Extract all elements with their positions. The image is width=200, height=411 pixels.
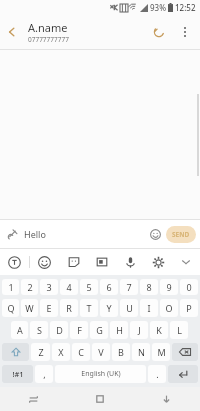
staticText: 1 bbox=[8, 281, 14, 293]
button[interactable]: U bbox=[120, 299, 138, 317]
button[interactable]: I bbox=[140, 299, 158, 317]
button[interactable]: O bbox=[160, 299, 178, 317]
button[interactable]: Hide keyboard bbox=[133, 387, 200, 411]
staticText: S bbox=[37, 324, 42, 336]
button[interactable]: V bbox=[92, 343, 110, 361]
button[interactable]: Backspace bbox=[172, 343, 198, 361]
button[interactable]: C bbox=[72, 343, 90, 361]
button[interactable]: D bbox=[50, 321, 68, 339]
button[interactable]: F bbox=[70, 321, 88, 339]
button[interactable]: M bbox=[152, 343, 170, 361]
staticText: V bbox=[98, 346, 104, 358]
staticText: T bbox=[86, 302, 92, 314]
staticText: O bbox=[165, 302, 173, 314]
staticText: 3 bbox=[46, 281, 52, 293]
button[interactable]: English (UK) bbox=[55, 365, 146, 383]
button[interactable]: N bbox=[132, 343, 150, 361]
button[interactable]: A bbox=[11, 321, 28, 339]
staticText: A.name bbox=[28, 20, 68, 35]
button[interactable]: 1 bbox=[2, 279, 19, 295]
button[interactable]: Voice input bbox=[116, 249, 144, 275]
button[interactable]: W bbox=[21, 299, 38, 317]
staticText: 7 bbox=[126, 281, 132, 293]
button[interactable]: 4 bbox=[60, 279, 78, 295]
button[interactable]: L bbox=[170, 321, 188, 339]
staticText: SEND bbox=[172, 230, 190, 239]
button[interactable]: GIF bbox=[88, 249, 116, 275]
button[interactable]: More options bbox=[172, 19, 198, 45]
button[interactable]: 7 bbox=[120, 279, 138, 295]
button[interactable]: 0 bbox=[180, 279, 198, 295]
staticText: 93% bbox=[150, 2, 166, 13]
staticText: D bbox=[56, 324, 63, 336]
button[interactable]: 8 bbox=[140, 279, 158, 295]
button[interactable]: K bbox=[150, 321, 168, 339]
button[interactable]: H bbox=[110, 321, 128, 339]
button[interactable]: !#1 bbox=[2, 365, 33, 383]
button[interactable]: Text style bbox=[0, 249, 29, 275]
button[interactable]: X bbox=[52, 343, 70, 361]
staticText: N bbox=[138, 346, 145, 358]
button[interactable]: 6 bbox=[100, 279, 118, 295]
staticText: , bbox=[43, 368, 46, 380]
staticText: English (UK) bbox=[81, 369, 121, 379]
staticText: 5 bbox=[86, 281, 92, 293]
staticText: 2 bbox=[27, 281, 33, 293]
staticText: C bbox=[78, 346, 84, 358]
button[interactable]: R bbox=[60, 299, 78, 317]
button[interactable]: E bbox=[40, 299, 58, 317]
staticText: W bbox=[25, 302, 34, 314]
staticText: E bbox=[46, 302, 52, 314]
staticText: Hello bbox=[24, 228, 46, 240]
staticText: Y bbox=[106, 302, 112, 314]
button[interactable]: SEND bbox=[166, 226, 196, 243]
staticText: R bbox=[66, 302, 72, 314]
button[interactable]: Q bbox=[2, 299, 19, 317]
button[interactable]: P bbox=[180, 299, 198, 317]
staticText: L bbox=[177, 324, 182, 336]
staticText: I bbox=[147, 302, 151, 314]
button[interactable]: T bbox=[80, 299, 98, 317]
button[interactable]: A.name bbox=[28, 20, 146, 44]
staticText: B bbox=[118, 346, 124, 358]
button[interactable]: 3 bbox=[40, 279, 58, 295]
button[interactable]: 2 bbox=[21, 279, 38, 295]
button[interactable]: Call bbox=[146, 19, 172, 45]
staticText: 12:52 bbox=[175, 2, 196, 13]
button[interactable]: Recents bbox=[0, 387, 66, 411]
button[interactable]: 9 bbox=[160, 279, 178, 295]
button[interactable]: 5 bbox=[80, 279, 98, 295]
staticText: . bbox=[156, 368, 159, 380]
button[interactable]: Back bbox=[0, 20, 24, 44]
button[interactable]: Z bbox=[31, 343, 50, 361]
button[interactable]: S bbox=[30, 321, 48, 339]
staticText: F bbox=[77, 324, 82, 336]
button[interactable]: Stickers bbox=[59, 249, 88, 275]
staticText: K bbox=[156, 324, 162, 336]
button[interactable]: Settings bbox=[144, 249, 172, 275]
button[interactable]: Enter bbox=[168, 365, 198, 383]
button[interactable]: Emoji bbox=[30, 249, 59, 275]
staticText: 0 bbox=[186, 281, 192, 293]
button[interactable]: Home bbox=[66, 387, 133, 411]
staticText: J bbox=[138, 324, 141, 336]
staticText: X bbox=[58, 346, 64, 358]
staticText: 9 bbox=[166, 281, 172, 293]
staticText: 6 bbox=[106, 281, 112, 293]
staticText: M bbox=[157, 346, 166, 358]
staticText: Q bbox=[7, 302, 15, 314]
button[interactable]: B bbox=[112, 343, 130, 361]
button[interactable]: G bbox=[90, 321, 108, 339]
button[interactable]: Expand bbox=[172, 249, 200, 275]
button[interactable]: Y bbox=[100, 299, 118, 317]
staticText: G bbox=[96, 324, 103, 336]
button[interactable]: , bbox=[35, 365, 53, 383]
button[interactable]: Attach bbox=[0, 222, 24, 246]
button[interactable]: Emoji bbox=[144, 223, 166, 245]
button[interactable]: J bbox=[130, 321, 148, 339]
staticText: Z bbox=[38, 346, 44, 358]
staticText: 4 bbox=[66, 281, 72, 293]
staticText: U bbox=[126, 302, 133, 314]
button[interactable]: Shift bbox=[2, 343, 29, 361]
button[interactable]: . bbox=[148, 365, 166, 383]
